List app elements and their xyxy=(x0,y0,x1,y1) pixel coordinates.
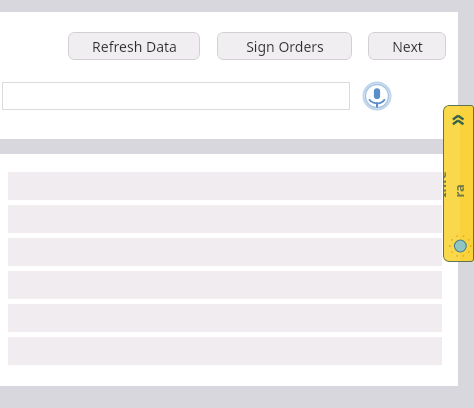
button[interactable]: Infera HCC panel xyxy=(443,105,474,262)
staticText: Refresh Data xyxy=(92,37,177,56)
staticText: Sign Orders xyxy=(246,37,324,56)
staticText: Infera HCC xyxy=(443,166,474,197)
button[interactable] xyxy=(2,82,350,110)
button[interactable]: Sign Orders xyxy=(217,32,352,60)
staticText: Next xyxy=(392,37,423,56)
button[interactable]: Voice input xyxy=(362,81,392,111)
button[interactable]: Refresh Data xyxy=(68,32,200,60)
button[interactable]: Next xyxy=(368,32,446,60)
